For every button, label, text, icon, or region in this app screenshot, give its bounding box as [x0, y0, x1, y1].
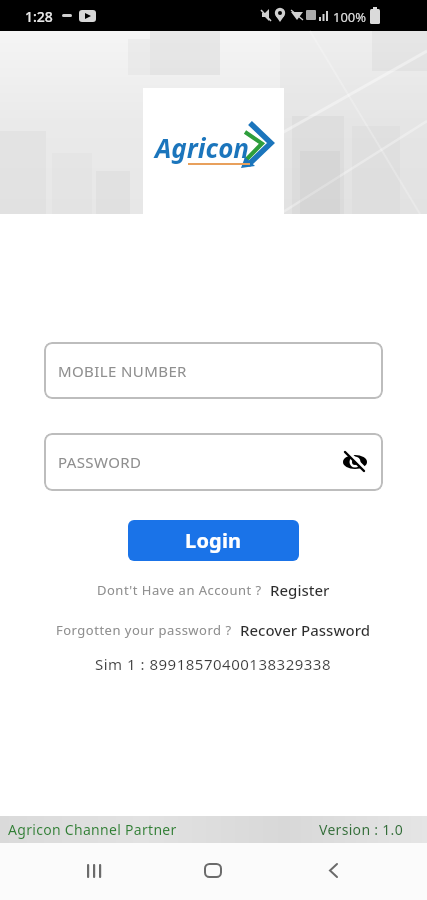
button[interactable]: Register [270, 580, 330, 600]
staticText: Agricon Channel Partner [8, 820, 177, 839]
staticText: Forgotten your password ? [56, 621, 232, 639]
button[interactable]: PASSWORD [44, 433, 383, 491]
staticText: Login [185, 527, 242, 554]
staticText: Sim 1 : 89918570400138329338 [95, 654, 332, 674]
staticText: Recover Password [240, 620, 371, 640]
button[interactable]: Login [128, 520, 299, 561]
staticText: Dont't Have an Account ? [97, 581, 262, 599]
button[interactable] [198, 856, 228, 886]
staticText: Agricon [155, 130, 250, 165]
staticText: Register [270, 580, 330, 600]
staticText: 100% [333, 8, 367, 26]
button[interactable]: MOBILE NUMBER [44, 342, 383, 399]
button[interactable] [318, 856, 348, 886]
button[interactable] [80, 856, 110, 886]
staticText: Version : 1.0 [319, 820, 403, 839]
staticText: 1:28 [25, 7, 53, 26]
button[interactable]: Recover Password [240, 620, 371, 640]
staticText: PASSWORD [58, 452, 142, 472]
staticText: MOBILE NUMBER [58, 361, 187, 381]
